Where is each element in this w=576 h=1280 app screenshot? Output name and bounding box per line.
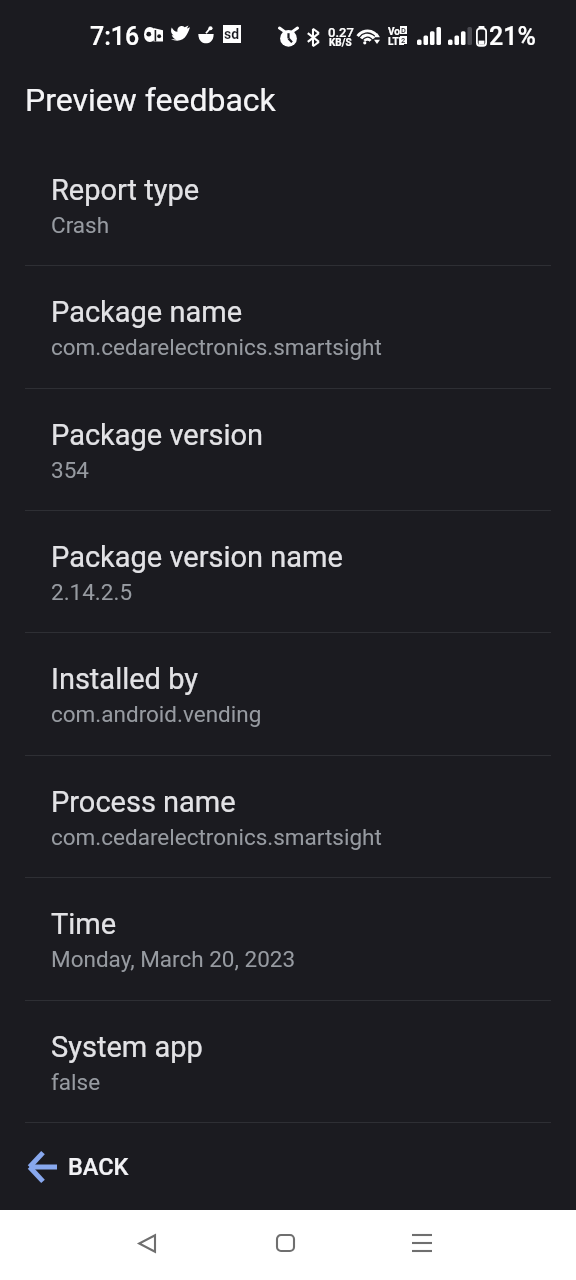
button[interactable]: BACK — [0, 1123, 576, 1210]
staticText: 7:16 — [90, 22, 140, 51]
staticText: Process name — [51, 785, 236, 819]
staticText: com.cedarelectronics.smartsight — [51, 334, 382, 360]
staticText: D — [401, 26, 406, 34]
staticText: Crash — [51, 212, 110, 238]
button[interactable]: Recent apps — [392, 1213, 452, 1273]
staticText: Preview feedback — [25, 81, 276, 119]
staticText: Package version name — [51, 540, 343, 574]
staticText: Package name — [51, 295, 243, 329]
staticText: Installed by — [51, 662, 199, 696]
button[interactable]: Process name — [0, 756, 576, 878]
button[interactable]: System app — [0, 1001, 576, 1123]
staticText: Package version — [51, 418, 264, 452]
button[interactable]: Home — [255, 1213, 315, 1273]
staticText: 2 — [401, 36, 406, 44]
button[interactable]: Report type — [0, 144, 576, 266]
staticText: com.android.vending — [51, 701, 262, 727]
button[interactable]: Package name — [0, 266, 576, 389]
staticText: Vo — [388, 26, 400, 38]
staticText: sd — [224, 26, 240, 42]
button[interactable]: Package version name — [0, 511, 576, 633]
staticText: 354 — [51, 457, 89, 483]
staticText: BACK — [68, 1153, 129, 1181]
staticText: 2.14.2.5 — [51, 579, 133, 605]
staticText: Monday, March 20, 2023 — [51, 946, 296, 972]
staticText: System app — [51, 1030, 203, 1064]
button[interactable]: Back — [117, 1213, 177, 1273]
staticText: 21% — [489, 22, 536, 51]
staticText: com.cedarelectronics.smartsight — [51, 824, 382, 850]
staticText: KB/S — [329, 37, 352, 49]
button[interactable]: Installed by — [0, 633, 576, 756]
button[interactable]: Time — [0, 878, 576, 1001]
button[interactable]: Package version — [0, 389, 576, 511]
staticText: Report type — [51, 173, 200, 207]
staticText: 0.27 — [328, 25, 354, 40]
staticText: Time — [51, 907, 117, 941]
staticText: false — [51, 1069, 101, 1095]
staticText: LTE — [388, 36, 405, 48]
